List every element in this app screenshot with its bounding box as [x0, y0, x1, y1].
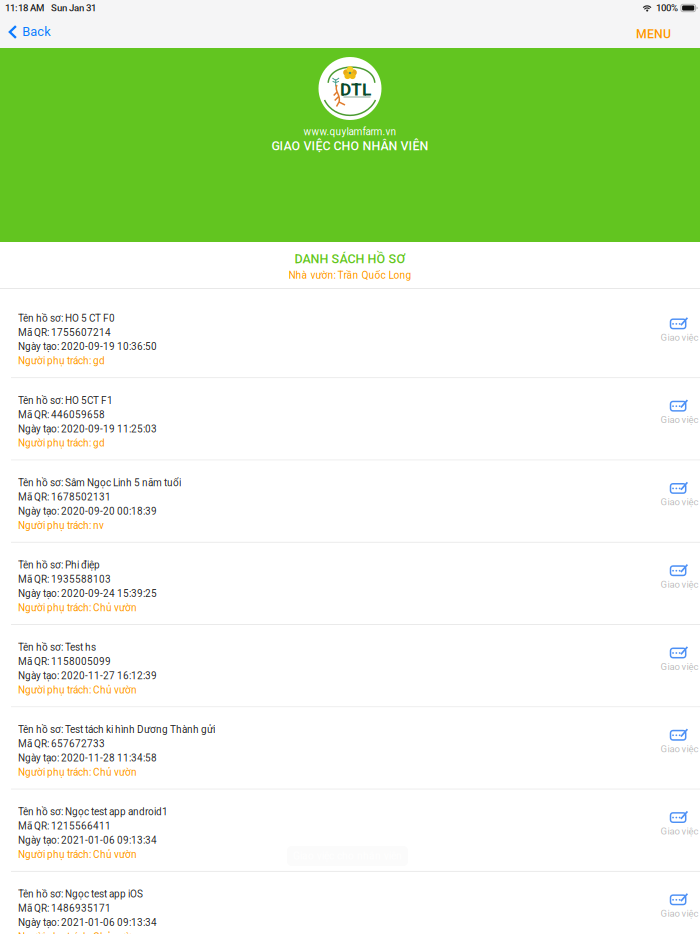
- staticText: Tên hồ sơ: Ngọc test app iOS: [18, 888, 143, 900]
- button[interactable]: Tên hồ sơ: Sâm Ngọc Linh 5 năm tuổi: [0, 461, 700, 542]
- button[interactable]: Giao việc: [657, 625, 700, 672]
- staticText: Người phụ trách: Chủ vườn: [18, 766, 137, 778]
- button[interactable]: Tên hồ sơ: Phi điệp: [0, 543, 700, 624]
- staticText: Tên hồ sơ: Test hs: [18, 641, 96, 653]
- staticText: Giao việc: [660, 743, 698, 755]
- staticText: Nhà vườn: Trần Quốc Long: [288, 269, 411, 281]
- staticText: Giao việc: [660, 579, 698, 590]
- staticText: 100%: [656, 2, 678, 14]
- button[interactable]: Giao việc: [657, 543, 700, 590]
- staticText: Ngày tạo: 2020-11-28 11:34:58: [18, 752, 157, 764]
- staticText: Back: [22, 24, 50, 39]
- staticText: Ngày tạo: 2020-09-24 15:39:25: [18, 588, 157, 599]
- staticText: Giao việc: [660, 908, 698, 919]
- staticText: Người phụ trách: Chủ vườn: [18, 684, 137, 696]
- staticText: Giao việc: [660, 661, 698, 672]
- button[interactable]: Giao việc: [657, 296, 700, 343]
- button[interactable]: Giao việc: [657, 872, 700, 919]
- staticText: Ngày tạo: 2020-09-20 00:18:39: [18, 505, 157, 517]
- button[interactable]: Tên hồ sơ: Ngọc test app iOS: [0, 872, 700, 934]
- staticText: DTL: [340, 79, 371, 100]
- staticText: Ngày tạo: 2020-09-19 11:25:03: [18, 423, 157, 435]
- staticText: Tên hồ sơ: Test tách ki hình Dương Thành…: [18, 724, 215, 735]
- staticText: Người phụ trách: Chủ vườn: [18, 849, 137, 860]
- button[interactable]: Tên hồ sơ: HO 5CT F1: [0, 378, 700, 460]
- staticText: Tên hồ sơ: Ngọc test app android1: [18, 806, 168, 818]
- button[interactable]: Giao việc: [657, 707, 700, 755]
- staticText: Tên hồ sơ: Sâm Ngọc Linh 5 năm tuổi: [18, 477, 181, 489]
- staticText: Mã QR: 1935588103: [18, 573, 111, 585]
- staticText: Người phụ trách: gd: [18, 355, 105, 367]
- staticText: Tên hồ sơ: HO 5 CT F0: [18, 312, 115, 324]
- button[interactable]: Tên hồ sơ: HO 5 CT F0: [0, 296, 700, 377]
- staticText: Mã QR: 1755607214: [18, 327, 111, 338]
- staticText: Mã QR: 446059658: [18, 409, 105, 421]
- button[interactable]: Giao việc: [657, 790, 700, 837]
- staticText: Mã QR: 1215566411: [18, 820, 111, 832]
- staticText: Giao việc: [660, 825, 698, 837]
- button[interactable]: MENU: [623, 20, 700, 48]
- staticText: Tên hồ sơ: Phi điệp: [18, 559, 100, 571]
- staticText: Sun Jan 31: [51, 2, 96, 14]
- staticText: GIAO VIỆC CHO NHÂN VIÊN: [271, 139, 428, 153]
- button[interactable]: Tên hồ sơ: Ngọc test app android1: [0, 790, 700, 871]
- staticText: MENU: [636, 27, 671, 41]
- button[interactable]: Back: [0, 20, 59, 48]
- staticText: Mã QR: 1158005099: [18, 656, 111, 667]
- staticText: DANH SÁCH HỒ SƠ: [294, 252, 405, 266]
- staticText: Giao việc: [660, 414, 698, 425]
- staticText: Người phụ trách: Chủ vườn: [18, 602, 137, 614]
- staticText: Người phụ trách: gd: [18, 437, 105, 449]
- staticText: Ngày tạo: 2020-11-27 16:12:39: [18, 670, 157, 682]
- button[interactable]: Giao việc: [657, 461, 700, 508]
- staticText: Ngày tạo: 2020-09-19 10:36:50: [18, 341, 157, 352]
- staticText: 11:18 AM: [5, 2, 44, 14]
- staticText: Mã QR: 1678502131: [18, 491, 111, 503]
- button[interactable]: Tên hồ sơ: Test tách ki hình Dương Thành…: [0, 707, 700, 789]
- staticText: Ngày tạo: 2021-01-06 09:13:34: [18, 917, 157, 928]
- staticText: Giao việc: [660, 496, 698, 508]
- staticText: Người phụ trách: Chủ vườn: [18, 931, 137, 934]
- staticText: Mã QR: 1486935171: [18, 902, 111, 914]
- button[interactable]: Tên hồ sơ: Test hs: [0, 625, 700, 706]
- staticText: Giao việc: [660, 332, 698, 343]
- staticText: www.quylamfarm.vn: [303, 126, 396, 138]
- staticText: Ngày tạo: 2021-01-06 09:13:34: [18, 834, 157, 846]
- staticText: Tên hồ sơ: HO 5CT F1: [18, 395, 113, 406]
- button[interactable]: Giao việc: [657, 378, 700, 425]
- staticText: Người phụ trách: nv: [18, 520, 104, 531]
- staticText: Mã QR: 657672733: [18, 738, 105, 750]
